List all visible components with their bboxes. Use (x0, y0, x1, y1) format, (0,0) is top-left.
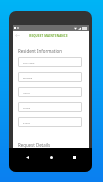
button[interactable]: Back (13, 31, 22, 40)
button[interactable]: Phone (18, 102, 82, 112)
button[interactable]: Home (46, 152, 56, 162)
staticText: REQUEST MAINTENANCE (29, 34, 68, 38)
staticText: Resident Information (18, 48, 62, 54)
button[interactable]: E-mail (18, 117, 82, 127)
button[interactable]: Building (18, 72, 82, 82)
button[interactable]: Unit # (18, 87, 82, 97)
staticText: Request Details (18, 142, 51, 148)
staticText: Building (23, 76, 33, 79)
button[interactable]: Back (22, 152, 32, 162)
staticText: Unit # (23, 91, 30, 94)
button[interactable]: Full Name (18, 57, 82, 67)
button[interactable]: Recents (69, 152, 79, 162)
staticText: Full Name (23, 61, 35, 64)
staticText: Phone (23, 106, 31, 109)
staticText: E-mail (23, 121, 30, 124)
